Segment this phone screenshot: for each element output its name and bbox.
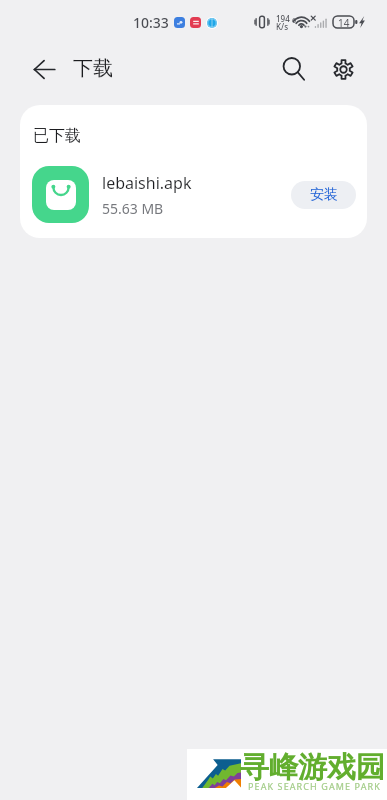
- staticText: 6: [292, 16, 297, 26]
- staticText: 已下载: [33, 126, 81, 146]
- button[interactable]: 安装: [291, 181, 356, 209]
- staticText: 55.63 MB: [102, 199, 164, 218]
- staticText: 寻峰游戏园: [240, 749, 385, 786]
- staticText: 下载: [73, 56, 113, 81]
- button[interactable]: Settings: [325, 51, 361, 87]
- staticText: 14: [338, 16, 350, 28]
- staticText: K/s: [276, 21, 289, 32]
- staticText: 10:33: [133, 13, 169, 32]
- staticText: PEAK SEARCH GAME PARK: [248, 780, 381, 792]
- button[interactable]: Search: [276, 51, 312, 87]
- staticText: 194: [276, 13, 290, 24]
- staticText: 安装: [310, 186, 338, 204]
- button[interactable]: Back: [27, 52, 61, 86]
- staticText: lebaishi.apk: [102, 172, 192, 194]
- button[interactable]: lebaishi.apk: [20, 146, 367, 238]
